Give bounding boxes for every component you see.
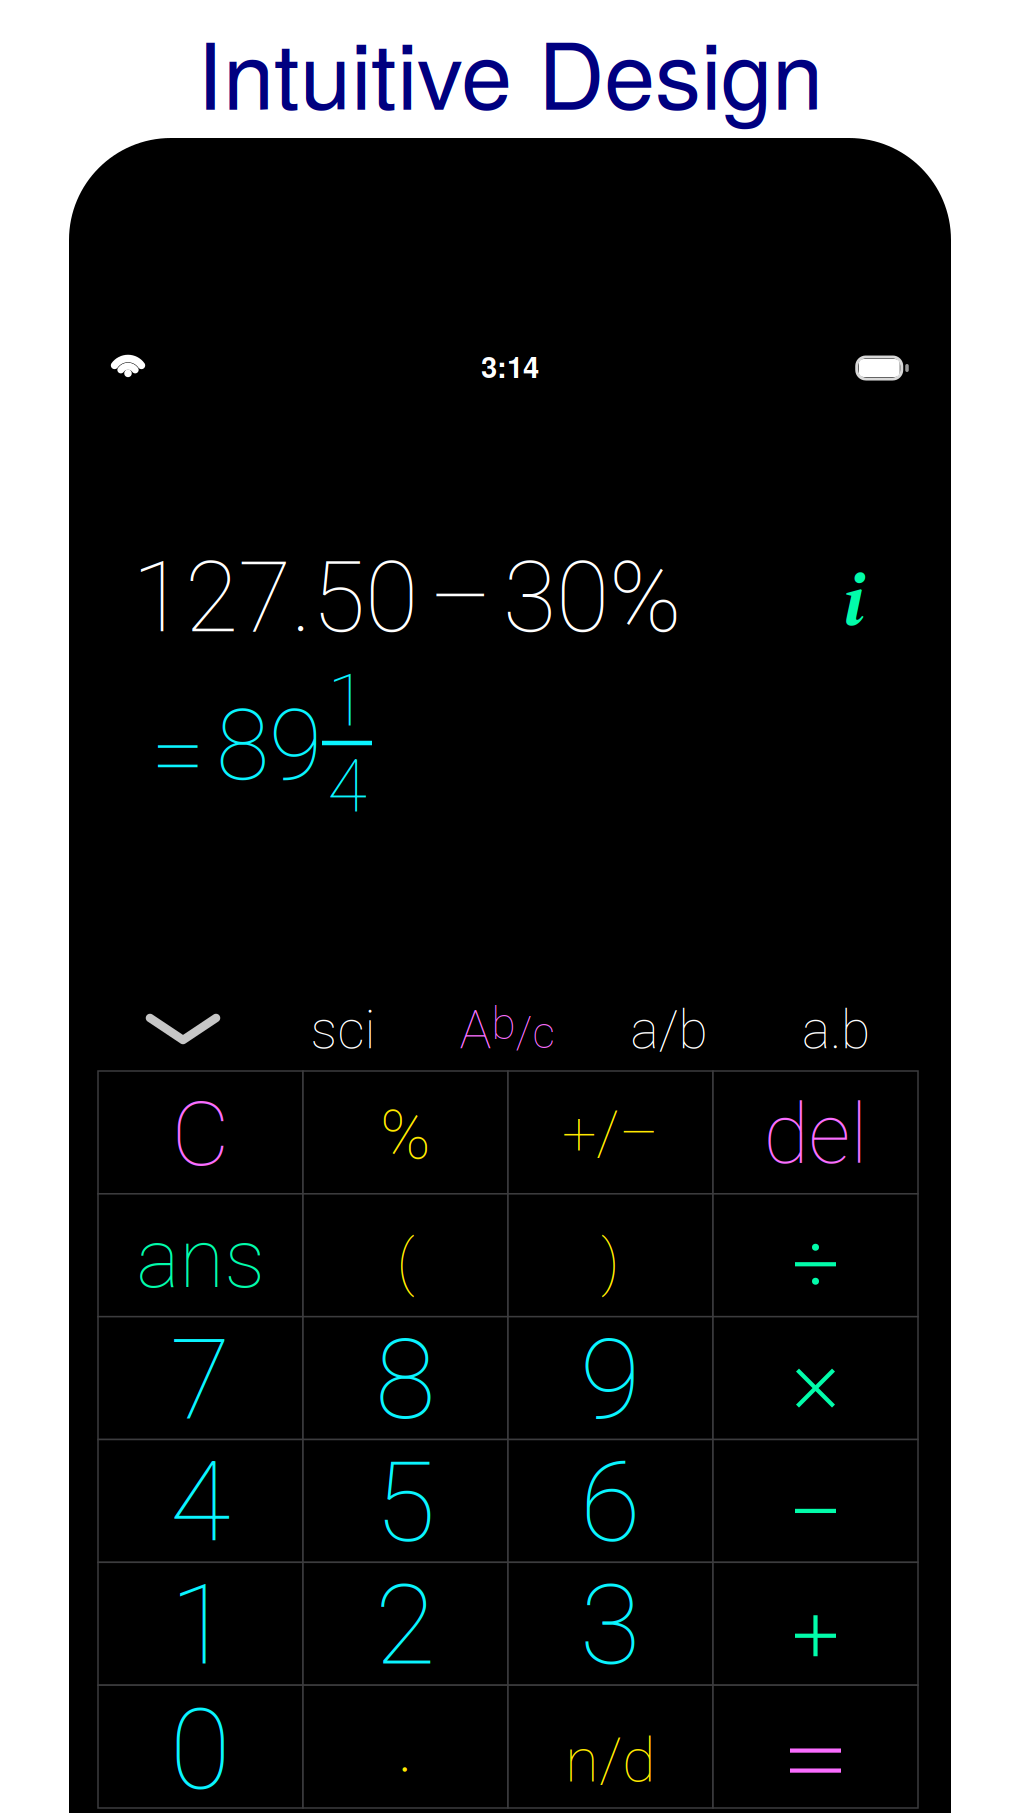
button[interactable]: Subtract (713, 1439, 918, 1562)
staticText: 1 (170, 1561, 231, 1691)
staticText: 2 (375, 1561, 436, 1691)
button[interactable]: +/– (508, 1071, 713, 1194)
button[interactable]: a.b (761, 994, 911, 1066)
button[interactable]: % (303, 1071, 508, 1194)
button[interactable]: . (303, 1685, 508, 1808)
button[interactable]: 6 (508, 1439, 713, 1562)
button[interactable]: 2 (303, 1562, 508, 1685)
staticText: 4 (170, 1438, 231, 1568)
staticText: % (380, 1096, 431, 1175)
button[interactable]: Add (713, 1562, 918, 1685)
staticText: ( (396, 1226, 414, 1298)
staticText: 9 (580, 1315, 641, 1445)
staticText: /c (515, 1007, 554, 1059)
staticText: n/d (565, 1725, 656, 1796)
staticText: . (396, 1695, 414, 1792)
button[interactable]: ans (98, 1194, 303, 1317)
staticText: 127.50 (132, 541, 418, 655)
button[interactable]: A (432, 994, 582, 1066)
staticText: b (491, 998, 515, 1050)
staticText: C (171, 1082, 229, 1187)
button[interactable]: 9 (508, 1317, 713, 1439)
staticText: 8 (375, 1315, 436, 1445)
staticText: a/b (630, 999, 707, 1061)
button[interactable]: ) (508, 1194, 713, 1317)
button[interactable]: 7 (98, 1317, 303, 1439)
staticText: 0 (170, 1686, 231, 1813)
button[interactable]: a/b (594, 994, 744, 1066)
staticText: = (151, 698, 205, 812)
button[interactable]: 5 (303, 1439, 508, 1562)
button[interactable]: Info (819, 558, 889, 638)
button[interactable]: 4 (98, 1439, 303, 1562)
staticText: 3 (580, 1561, 641, 1691)
button[interactable]: 0 (98, 1685, 303, 1808)
button[interactable]: Multiply (713, 1317, 918, 1439)
button[interactable]: 1 (98, 1562, 303, 1685)
button[interactable]: Collapse keypad (123, 994, 243, 1064)
staticText: 3:14 (481, 345, 539, 387)
staticText: ) (601, 1226, 620, 1298)
button[interactable]: 3:14 (455, 344, 565, 388)
staticText: A (459, 999, 491, 1061)
staticText: sci (310, 999, 375, 1061)
staticText: 89 (216, 689, 322, 803)
staticText: ans (136, 1212, 264, 1307)
button[interactable]: n/d (508, 1685, 713, 1808)
button[interactable]: 8 (303, 1317, 508, 1439)
staticText: Intuitive Design (197, 4, 823, 136)
button[interactable]: Divide (713, 1194, 918, 1317)
staticText: 1 (327, 659, 366, 743)
staticText: 5 (375, 1438, 436, 1568)
button[interactable]: sci (268, 994, 418, 1066)
staticText: 6 (580, 1438, 641, 1568)
button[interactable]: 3 (508, 1562, 713, 1685)
staticText: del (763, 1086, 867, 1183)
button[interactable]: C (98, 1071, 303, 1194)
staticText: i (843, 547, 865, 649)
staticText: +/– (562, 1097, 659, 1169)
button[interactable]: ( (303, 1194, 508, 1317)
button[interactable]: del (713, 1071, 918, 1194)
staticText: 4 (327, 745, 366, 829)
staticText: a.b (802, 999, 870, 1061)
staticText: 30% (503, 541, 682, 655)
staticText: 7 (170, 1315, 231, 1445)
button[interactable]: Equals (713, 1685, 918, 1808)
staticText: – (429, 541, 492, 655)
